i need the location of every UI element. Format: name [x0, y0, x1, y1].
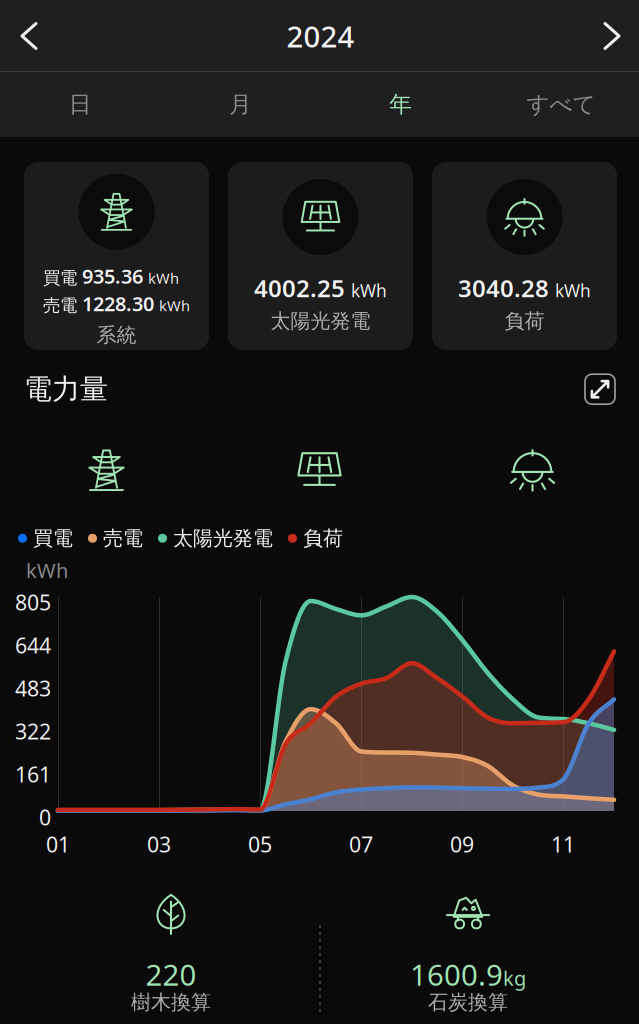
staticText: 935.36 — [82, 263, 143, 289]
staticText: 日 — [69, 91, 92, 118]
staticText: 01 — [46, 830, 70, 858]
staticText: すべて — [526, 91, 595, 118]
button[interactable]: すべて — [481, 72, 639, 137]
staticText: 買電 — [33, 526, 73, 551]
staticText: 売電 — [43, 295, 77, 316]
staticText: kg — [503, 965, 526, 991]
staticText: 売電 — [103, 526, 143, 551]
button[interactable]: Next year — [581, 1, 639, 70]
staticText: 805 — [15, 588, 51, 616]
staticText: 11 — [551, 830, 575, 858]
staticText: 644 — [15, 631, 51, 659]
staticText: 年 — [389, 91, 412, 118]
button[interactable]: Previous year — [0, 1, 60, 70]
staticText: 1228.30 — [82, 290, 154, 317]
staticText: 負荷 — [504, 309, 544, 333]
staticText: 161 — [15, 760, 51, 788]
button[interactable]: 日 — [0, 72, 160, 137]
staticText: 0 — [39, 803, 51, 831]
staticText: kWh — [159, 296, 190, 315]
staticText: 05 — [248, 830, 272, 858]
staticText: kWh — [26, 557, 68, 584]
staticText: 系統 — [96, 323, 136, 347]
staticText: 322 — [15, 717, 51, 745]
staticText: 電力量 — [24, 372, 108, 406]
button[interactable]: 月 — [160, 72, 320, 137]
staticText: 483 — [15, 674, 51, 702]
button[interactable]: Expand chart — [585, 374, 615, 404]
staticText: 買電 — [43, 267, 77, 289]
staticText: 月 — [229, 91, 252, 118]
staticText: 4002.25 — [254, 272, 345, 304]
staticText: 1600.9 — [410, 955, 503, 994]
button[interactable]: 年 — [320, 72, 481, 137]
staticText: 03 — [147, 830, 171, 858]
staticText: 3040.28 — [458, 272, 549, 304]
staticText: kWh — [148, 268, 179, 288]
staticText: 石炭換算 — [428, 990, 508, 1015]
staticText: 樹木換算 — [131, 990, 211, 1015]
staticText: 07 — [349, 830, 373, 858]
staticText: 太陽光発電 — [173, 526, 273, 551]
staticText: 負荷 — [303, 526, 343, 551]
staticText: kWh — [351, 279, 387, 302]
staticText: kWh — [555, 279, 591, 302]
staticText: 2024 — [286, 16, 354, 55]
staticText: 220 — [145, 955, 196, 994]
staticText: 09 — [450, 830, 474, 858]
staticText: 太陽光発電 — [270, 309, 370, 333]
